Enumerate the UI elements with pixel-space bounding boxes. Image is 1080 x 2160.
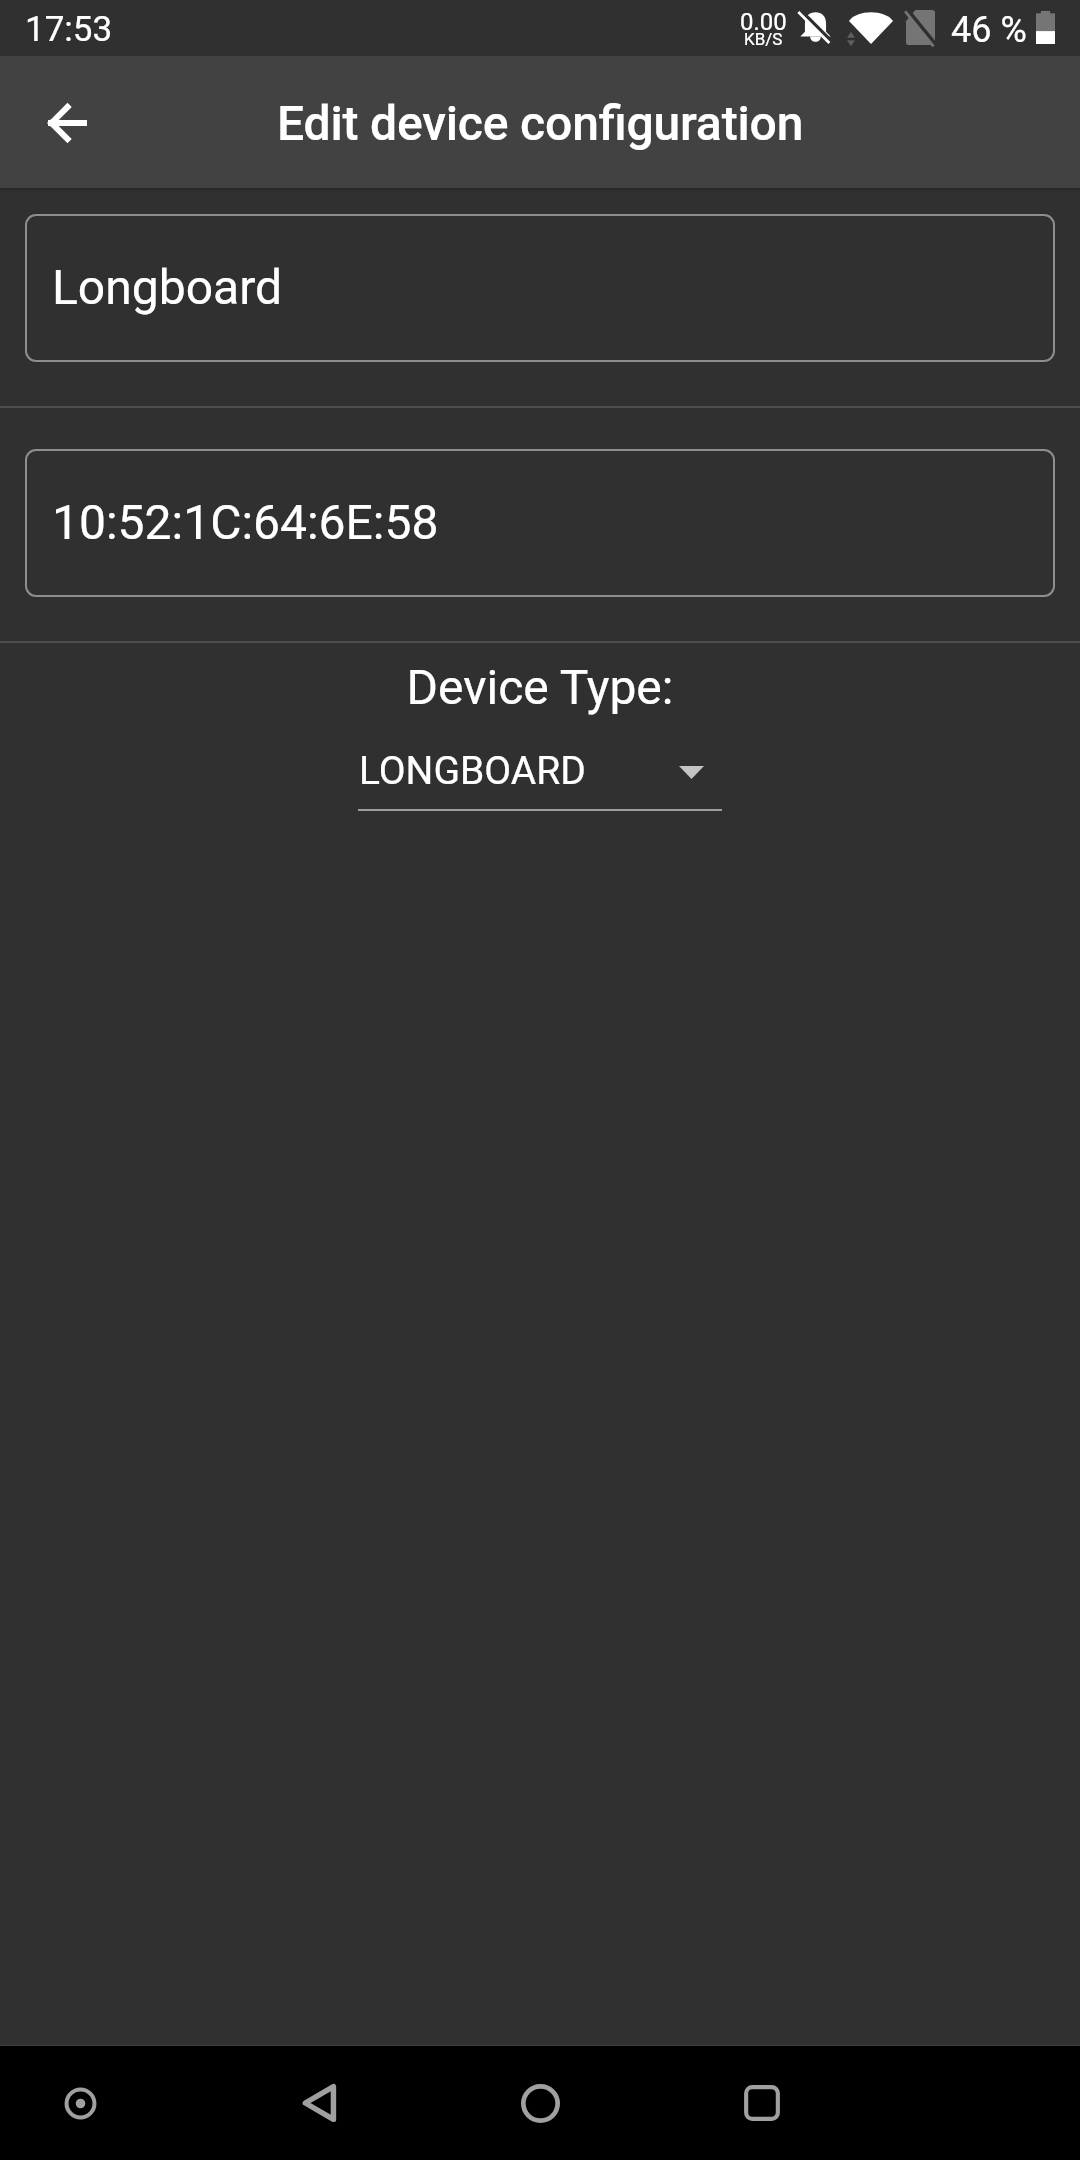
staticText: KB/S [744,29,783,49]
button[interactable]: Home [483,2046,597,2160]
button[interactable]: 10:52:1C:64:6E:58 [25,449,1055,597]
button[interactable]: Recent apps [705,2046,819,2160]
button[interactable]: Longboard [25,214,1055,362]
staticText: 17:53 [25,9,113,50]
button[interactable]: Navigate up [18,74,114,170]
button[interactable]: Screenshot [23,2046,137,2160]
button[interactable]: LONGBOARD [358,737,722,811]
staticText: LONGBOARD [359,748,586,794]
staticText: Edit device configuration [277,95,804,151]
staticText: Longboard [52,259,283,315]
staticText: Device Type: [0,659,1080,715]
staticText: 0.00 [740,8,787,36]
staticText: 46 % [951,9,1027,51]
button[interactable]: Back [263,2046,377,2160]
staticText: 10:52:1C:64:6E:58 [52,494,439,550]
